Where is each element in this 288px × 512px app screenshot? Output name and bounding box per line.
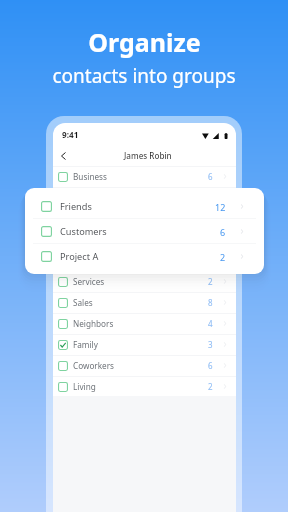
button[interactable]: Back xyxy=(54,145,70,161)
staticText: Family xyxy=(73,339,98,350)
button[interactable]: Customers xyxy=(25,219,264,244)
button[interactable]: Groups xyxy=(53,250,236,271)
staticText: 2 xyxy=(208,276,213,287)
staticText: 6 xyxy=(208,171,213,182)
staticText: 6 xyxy=(208,360,213,371)
button[interactable]: Family xyxy=(53,334,236,355)
button[interactable]: Services xyxy=(53,271,236,292)
button[interactable]: Friends xyxy=(25,194,264,219)
staticText: 8 xyxy=(208,297,213,308)
staticText: 2 xyxy=(220,251,226,263)
staticText: James Robin xyxy=(124,150,172,161)
staticText: Project A xyxy=(60,250,99,263)
button[interactable]: Project A xyxy=(25,244,264,269)
staticText: Organize xyxy=(88,25,201,59)
staticText: Services xyxy=(73,276,105,287)
staticText: Customers xyxy=(60,225,107,238)
button[interactable]: Friends xyxy=(53,187,236,208)
button[interactable]: Living xyxy=(53,376,236,397)
button[interactable]: Sales xyxy=(53,292,236,313)
staticText: Project A xyxy=(73,234,108,245)
staticText: 6 xyxy=(220,226,226,238)
staticText: Business xyxy=(73,171,107,182)
staticText: Living xyxy=(73,381,96,392)
staticText: 12 xyxy=(215,201,226,213)
button[interactable]: Project A xyxy=(53,229,236,250)
button[interactable]: Coworkers xyxy=(53,355,236,376)
staticText: Coworkers xyxy=(73,360,115,371)
staticText: Neighbors xyxy=(73,318,114,329)
button[interactable]: Customers xyxy=(53,208,236,229)
staticText: 3 xyxy=(208,339,213,350)
button[interactable]: Business xyxy=(53,166,236,187)
staticText: Friends xyxy=(60,200,92,213)
staticText: Sales xyxy=(73,297,93,308)
staticText: contacts into groups xyxy=(52,63,236,89)
staticText: 4 xyxy=(208,318,213,329)
button[interactable]: Neighbors xyxy=(53,313,236,334)
staticText: 9:41 xyxy=(62,129,79,140)
staticText: Groups xyxy=(73,255,102,266)
staticText: 2 xyxy=(208,381,213,392)
